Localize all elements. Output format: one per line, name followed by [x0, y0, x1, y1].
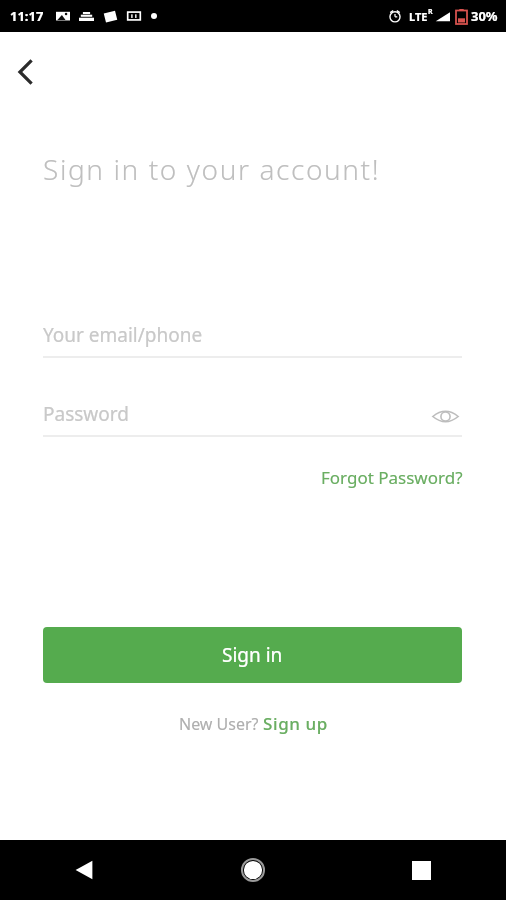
- button[interactable]: Home: [168, 840, 337, 900]
- staticText: New User?: [179, 713, 263, 735]
- button[interactable]: Forgot Password?: [321, 466, 463, 489]
- staticText: 11:17: [10, 7, 44, 25]
- button[interactable]: Back: [4, 50, 48, 94]
- button[interactable]: Back: [0, 840, 168, 900]
- staticText: Your email/phone: [43, 322, 203, 348]
- staticText: LTE: [409, 9, 428, 24]
- staticText: Sign in to your account!: [43, 150, 381, 188]
- button[interactable]: Sign in: [43, 627, 462, 683]
- button[interactable]: Sign up: [263, 712, 328, 735]
- button[interactable]: Your email/phone: [43, 322, 462, 358]
- button[interactable]: Show password: [428, 399, 462, 433]
- button[interactable]: Password: [43, 401, 462, 437]
- staticText: R: [428, 7, 433, 17]
- staticText: Sign in: [222, 642, 283, 668]
- button[interactable]: Recent apps: [337, 840, 506, 900]
- staticText: 30%: [471, 7, 498, 25]
- staticText: Password: [43, 401, 129, 427]
